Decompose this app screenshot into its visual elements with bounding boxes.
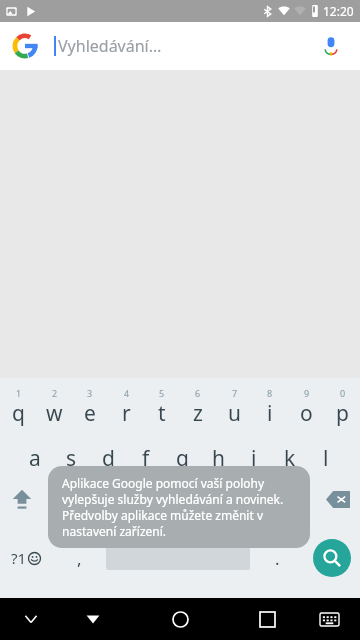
button[interactable]: a (16, 430, 53, 476)
staticText: 1 (16, 387, 22, 399)
button[interactable]: . (250, 522, 304, 594)
button[interactable]: Recent apps (236, 598, 298, 640)
button[interactable]: d (90, 430, 127, 476)
staticText: 6 (195, 387, 201, 399)
staticText: i (267, 399, 273, 428)
staticText: 5 (159, 387, 165, 399)
staticText: . (275, 547, 280, 570)
button[interactable]: Home (152, 598, 208, 640)
button[interactable]: s (53, 430, 90, 476)
button[interactable]: j (236, 430, 272, 476)
staticText: 3 (87, 387, 93, 399)
staticText: h (212, 444, 225, 473)
staticText: n (251, 490, 264, 519)
staticText: b (212, 490, 225, 519)
staticText: 7 (232, 387, 238, 399)
staticText: 12:20 (323, 3, 354, 19)
staticText: d (102, 444, 115, 473)
staticText: t (158, 399, 166, 428)
staticText: s (66, 444, 77, 473)
staticText: Aplikace Google pomocí vaší polohy vylep… (62, 475, 296, 539)
button[interactable]: x (82, 476, 121, 522)
button[interactable]: Space (106, 546, 250, 570)
button[interactable]: Search (304, 522, 360, 594)
button[interactable]: k (272, 430, 308, 476)
button[interactable]: 6 (180, 384, 216, 430)
staticText: f (142, 444, 150, 473)
button[interactable]: 7 (216, 384, 252, 430)
button[interactable]: 3 (72, 384, 108, 430)
staticText: o (300, 399, 313, 428)
button[interactable]: Backspace (316, 476, 360, 522)
staticText: ?1 (11, 548, 27, 568)
button[interactable]: 2 (36, 384, 72, 430)
button[interactable]: m (277, 476, 316, 522)
button[interactable]: ?1 (0, 522, 52, 594)
staticText: g (176, 444, 189, 473)
button[interactable]: Hide keyboard (0, 598, 62, 640)
staticText: 2 (52, 387, 58, 399)
button[interactable]: Back (62, 598, 124, 640)
staticText: a (29, 444, 41, 473)
button[interactable]: 8 (252, 384, 288, 430)
staticText: 0 (340, 387, 346, 399)
staticText: Vyhledávání… (58, 35, 162, 57)
staticText: w (46, 399, 63, 428)
staticText: p (336, 399, 349, 428)
button[interactable]: 9 (288, 384, 324, 430)
staticText: 8 (267, 387, 273, 399)
staticText: v (174, 490, 185, 519)
staticText: e (84, 399, 96, 428)
button[interactable]: b (199, 476, 238, 522)
button[interactable]: 5 (144, 384, 180, 430)
button[interactable]: g (164, 430, 200, 476)
staticText: 4 (124, 387, 130, 399)
button[interactable]: 1 (0, 384, 36, 430)
button[interactable]: Voice search (316, 31, 346, 61)
staticText: y (58, 490, 69, 519)
button[interactable]: h (200, 430, 236, 476)
staticText: u (228, 399, 241, 428)
staticText: c (135, 490, 146, 519)
staticText: x (96, 490, 108, 519)
button[interactable]: Vyhledávání… (0, 22, 360, 70)
staticText: z (193, 399, 203, 428)
button[interactable]: 0 (324, 384, 360, 430)
button[interactable]: y (44, 476, 82, 522)
staticText: 9 (304, 387, 310, 399)
button[interactable]: v (160, 476, 199, 522)
button[interactable]: c (121, 476, 160, 522)
staticText: k (284, 444, 296, 473)
button[interactable]: n (238, 476, 277, 522)
button[interactable]: Switch keyboard (298, 598, 360, 640)
staticText: , (77, 547, 82, 570)
button[interactable]: , (52, 522, 106, 594)
button[interactable]: l (308, 430, 344, 476)
button[interactable]: 4 (108, 384, 144, 430)
button[interactable]: Shift (0, 476, 44, 522)
staticText: l (323, 444, 329, 473)
staticText: r (122, 399, 131, 428)
button[interactable]: f (127, 430, 164, 476)
staticText: q (12, 399, 25, 428)
staticText: j (251, 444, 257, 473)
